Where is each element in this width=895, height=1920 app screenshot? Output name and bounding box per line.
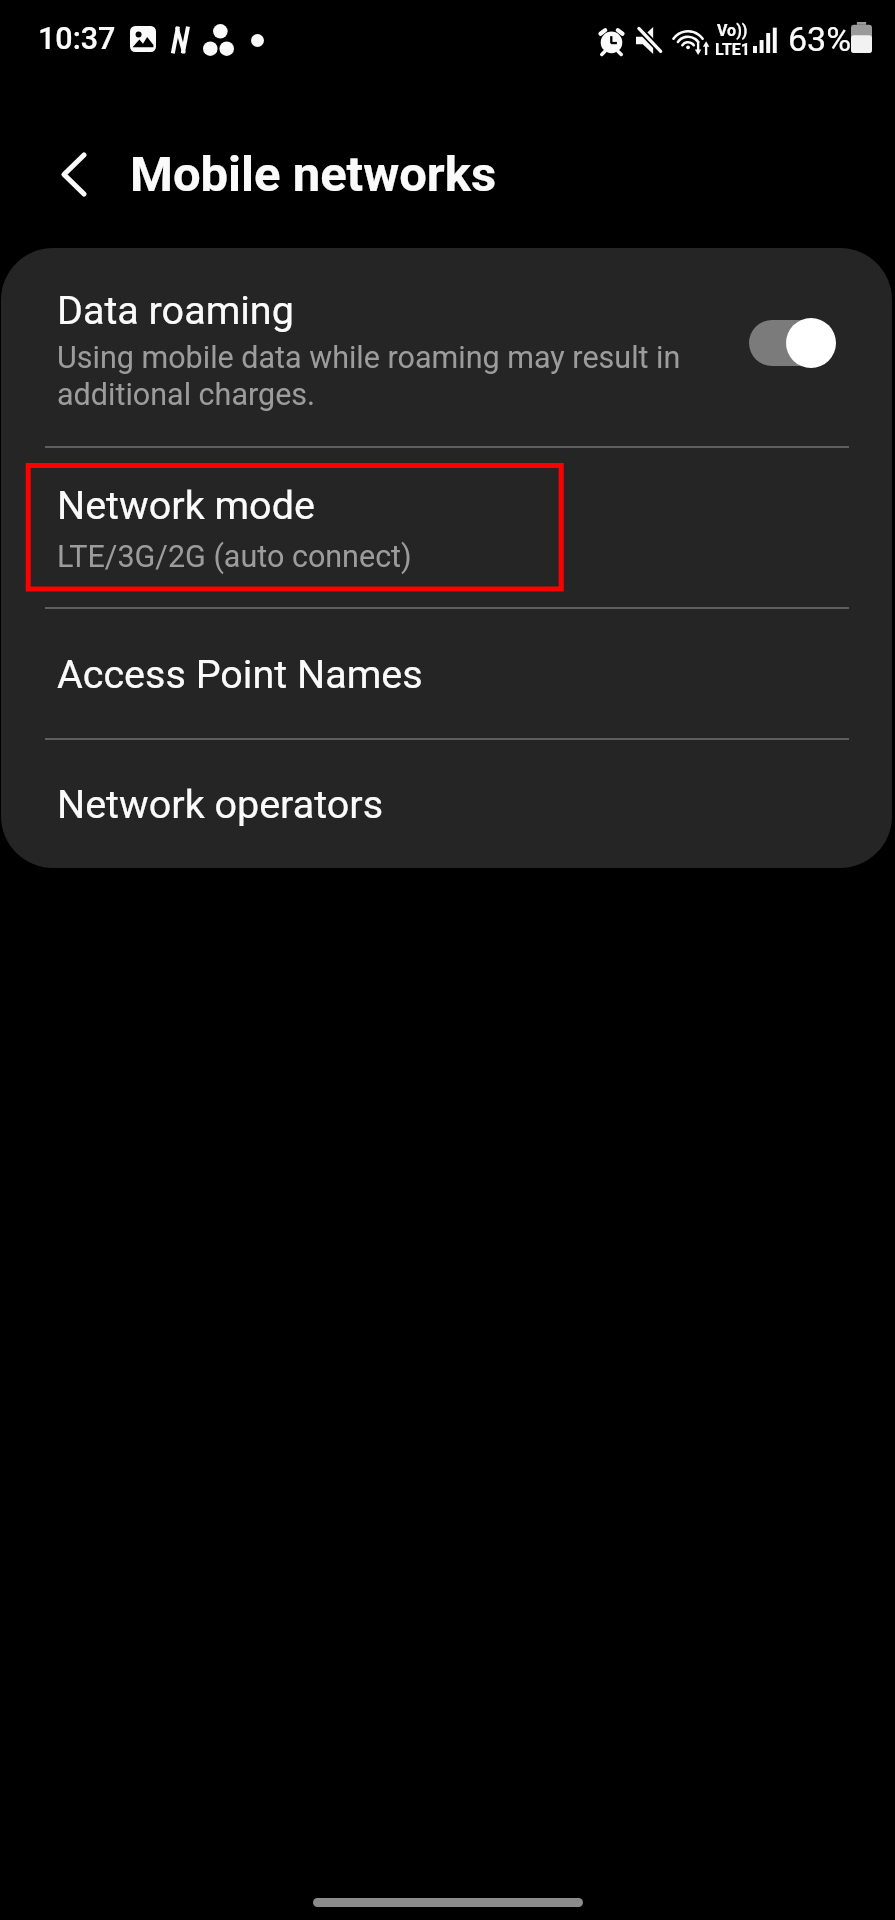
- button[interactable]: Access Point Names: [1, 609, 892, 738]
- staticText: 10:37: [38, 21, 116, 57]
- staticText: Network operators: [57, 781, 384, 827]
- staticText: 63%: [788, 19, 852, 59]
- staticText: Mobile networks: [130, 146, 497, 203]
- staticText: Vo)): [717, 21, 748, 40]
- staticText: Access Point Names: [57, 651, 423, 697]
- staticText: Data roaming: [57, 287, 294, 333]
- staticText: LTE1: [715, 40, 750, 59]
- button[interactable]: Data roaming switch, on: [749, 320, 834, 366]
- button[interactable]: Data roaming: [1, 248, 892, 446]
- staticText: Network mode: [57, 482, 315, 528]
- staticText: LTE/3G/2G (auto connect): [57, 539, 412, 575]
- button[interactable]: Network operators: [1, 740, 892, 868]
- button[interactable]: Network mode: [1, 448, 892, 607]
- button[interactable]: Navigate up: [37, 137, 111, 211]
- staticText: Using mobile data while roaming may resu…: [57, 340, 717, 412]
